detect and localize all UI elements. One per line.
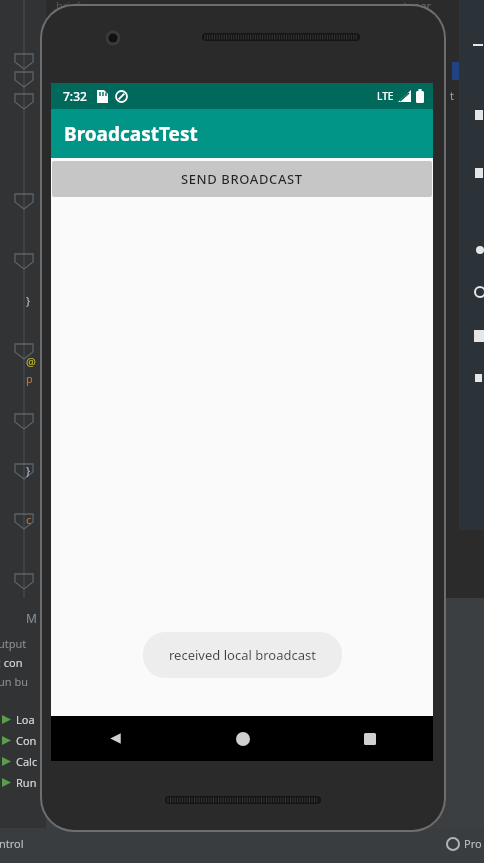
staticText: t [450,88,454,103]
staticText: 7:32 [63,88,87,104]
staticText: c [26,512,32,527]
staticText: Calc [16,754,38,769]
staticText: p [26,371,33,386]
button[interactable]: Recent apps [306,716,433,761]
button[interactable]: SEND BROADCAST [52,161,432,197]
staticText: Con [16,733,37,748]
staticText: M [26,610,37,626]
staticText: BroadcastTest [64,121,198,147]
staticText: stener [398,0,431,13]
staticText: } [26,293,31,308]
staticText: SEND BROADCAST [181,170,303,188]
button[interactable]: Home [179,716,306,761]
staticText: Run [16,775,37,790]
staticText: Loa [16,712,35,727]
staticText: ntrol [0,836,24,851]
staticText: @ [26,354,36,369]
staticText: Pro [464,836,482,851]
staticText: brief [56,0,81,13]
staticText: un bu [0,674,29,689]
staticText: utput [0,636,27,651]
staticText: LTE [377,89,394,103]
staticText: : con [0,655,23,670]
button[interactable]: Back [51,716,179,761]
staticText: } [26,463,31,478]
staticText: received local broadcast [169,646,316,664]
staticText: lick( [444,620,465,635]
